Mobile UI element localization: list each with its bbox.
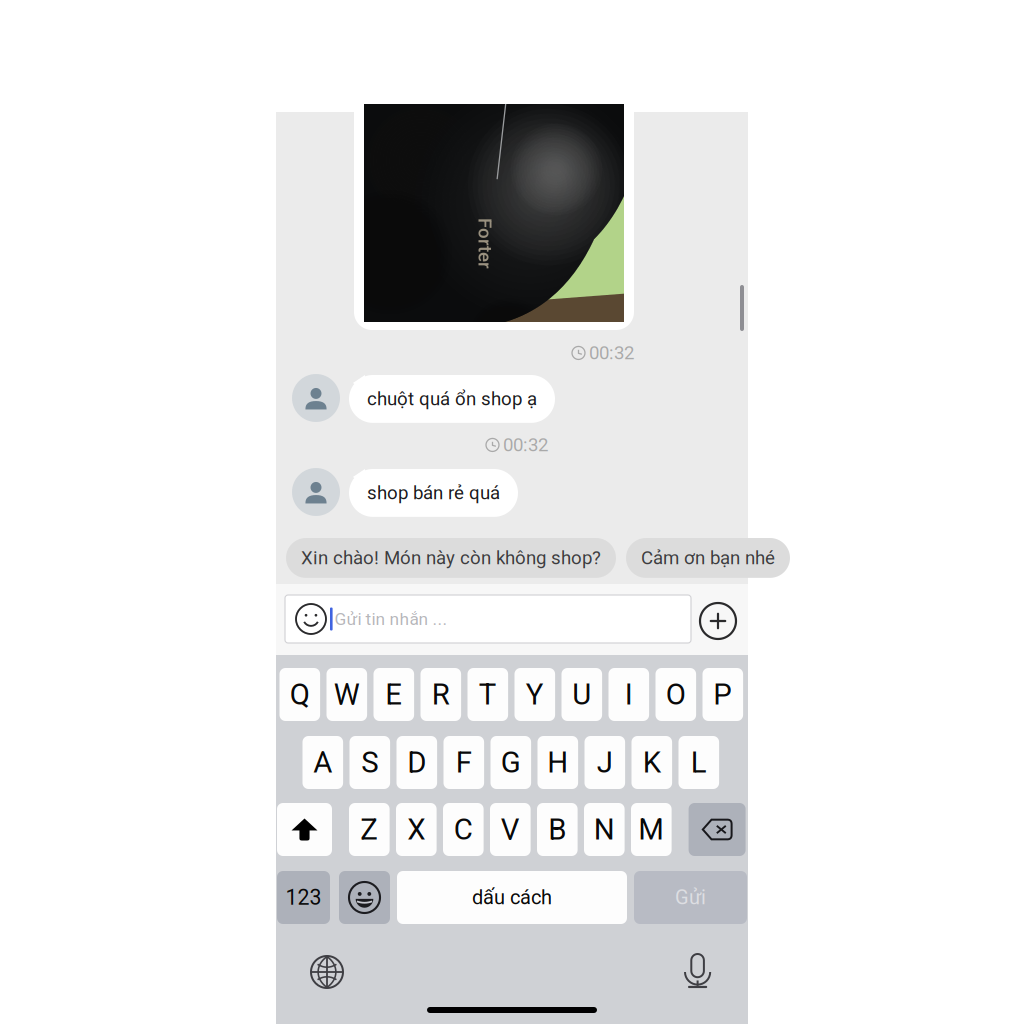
button[interactable]: Gửi tin nhắn ... bbox=[285, 595, 691, 643]
button[interactable]: S bbox=[349, 736, 390, 789]
button[interactable]: Delete bbox=[689, 803, 746, 856]
staticText: Cảm ơn bạn nhé bbox=[641, 547, 775, 569]
button[interactable]: F bbox=[443, 736, 484, 789]
button[interactable]: Gửi bbox=[634, 871, 747, 924]
button[interactable]: P bbox=[702, 668, 743, 721]
staticText: P bbox=[713, 677, 732, 712]
button[interactable]: Y bbox=[514, 668, 555, 721]
button[interactable]: Dictate bbox=[685, 954, 710, 990]
staticText: M bbox=[638, 812, 664, 847]
staticText: 00:32 bbox=[589, 342, 634, 364]
button[interactable]: C bbox=[443, 803, 484, 856]
staticText: U bbox=[572, 677, 591, 712]
button[interactable]: B bbox=[537, 803, 578, 856]
staticText: 00:32 bbox=[503, 434, 548, 456]
staticText: A bbox=[313, 745, 332, 780]
staticText: 123 bbox=[285, 885, 321, 910]
button[interactable]: O bbox=[655, 668, 696, 721]
staticText: O bbox=[666, 677, 686, 712]
staticText: B bbox=[548, 812, 566, 847]
staticText: D bbox=[407, 745, 426, 780]
button[interactable]: M bbox=[631, 803, 672, 856]
button[interactable]: Xin chào! Món này còn không shop? bbox=[286, 538, 616, 578]
button[interactable]: Emoji bbox=[339, 871, 390, 924]
button[interactable]: Z bbox=[349, 803, 390, 856]
staticText: G bbox=[501, 745, 521, 780]
button[interactable]: E bbox=[373, 668, 414, 721]
staticText: dấu cách bbox=[472, 886, 552, 909]
button[interactable]: W bbox=[326, 668, 367, 721]
button[interactable]: More options bbox=[700, 603, 736, 639]
staticText: W bbox=[334, 677, 360, 712]
button[interactable]: Q bbox=[279, 668, 320, 721]
staticText: V bbox=[501, 812, 520, 847]
staticText: K bbox=[643, 745, 661, 780]
staticText: N bbox=[594, 812, 615, 847]
staticText: T bbox=[479, 677, 497, 712]
staticText: Gửi tin nhắn ... bbox=[335, 609, 448, 629]
button[interactable]: G bbox=[490, 736, 531, 789]
button[interactable]: A bbox=[302, 736, 343, 789]
staticText: I bbox=[625, 677, 633, 712]
button[interactable]: X bbox=[396, 803, 437, 856]
staticText: L bbox=[691, 745, 707, 780]
button[interactable]: J bbox=[584, 736, 625, 789]
button[interactable]: Cảm ơn bạn nhé bbox=[626, 538, 790, 578]
button[interactable]: dấu cách bbox=[397, 871, 627, 924]
staticText: E bbox=[385, 677, 402, 712]
staticText: S bbox=[361, 745, 378, 780]
button[interactable]: T bbox=[467, 668, 508, 721]
button[interactable]: U bbox=[561, 668, 602, 721]
staticText: X bbox=[407, 812, 425, 847]
button[interactable]: H bbox=[537, 736, 578, 789]
button[interactable]: L bbox=[678, 736, 719, 789]
staticText: Xin chào! Món này còn không shop? bbox=[301, 547, 601, 569]
button[interactable]: K bbox=[631, 736, 672, 789]
button[interactable]: R bbox=[420, 668, 461, 721]
button[interactable]: N bbox=[584, 803, 625, 856]
staticText: chuột quá ổn shop ạ bbox=[367, 388, 537, 410]
staticText: H bbox=[547, 745, 568, 780]
button[interactable]: Change keyboard bbox=[311, 956, 343, 988]
staticText: F bbox=[456, 745, 472, 780]
button[interactable]: 123 bbox=[277, 871, 330, 924]
staticText: Gửi bbox=[675, 886, 706, 909]
button[interactable]: V bbox=[490, 803, 531, 856]
staticText: R bbox=[432, 677, 450, 712]
staticText: shop bán rẻ quá bbox=[367, 482, 500, 504]
button[interactable]: Shift bbox=[277, 803, 332, 856]
staticText: Q bbox=[290, 677, 310, 712]
staticText: Z bbox=[360, 812, 378, 847]
button[interactable]: I bbox=[608, 668, 649, 721]
button[interactable]: D bbox=[396, 736, 437, 789]
staticText: C bbox=[454, 812, 473, 847]
staticText: J bbox=[597, 745, 613, 780]
staticText: Y bbox=[526, 677, 544, 712]
staticText: Forter bbox=[459, 233, 510, 254]
